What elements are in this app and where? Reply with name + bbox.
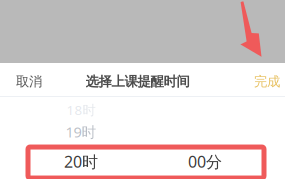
staticText: 18时 bbox=[66, 101, 95, 119]
staticText: 完成 bbox=[254, 73, 280, 90]
staticText: 取消 bbox=[16, 73, 42, 90]
button[interactable]: 完成 bbox=[242, 66, 285, 97]
staticText: 20时 bbox=[64, 151, 98, 172]
button[interactable]: 取消 bbox=[0, 66, 54, 97]
staticText: 00分 bbox=[188, 151, 222, 172]
staticText: 选择上课提醒时间 bbox=[85, 73, 189, 90]
staticText: 19时 bbox=[65, 122, 96, 141]
